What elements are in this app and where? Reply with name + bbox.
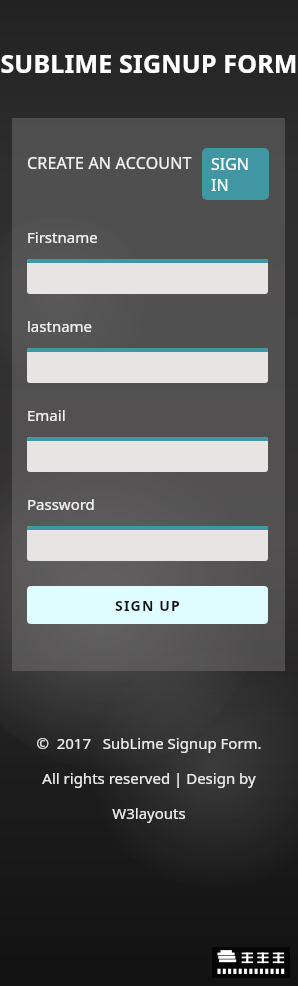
button[interactable] bbox=[27, 348, 268, 383]
staticText: lastname bbox=[27, 316, 93, 336]
staticText: © 2017 SubLime Signup Form. bbox=[0, 733, 298, 753]
staticText: Email bbox=[27, 405, 66, 425]
staticText: SIGN IN bbox=[211, 153, 269, 196]
staticText: Firstname bbox=[27, 227, 98, 247]
other: mobanwang.com watermark bbox=[212, 947, 290, 978]
staticText: W3layouts bbox=[0, 803, 298, 823]
button[interactable]: SIGN UP bbox=[27, 586, 268, 624]
staticText: Password bbox=[27, 494, 95, 514]
button[interactable] bbox=[27, 526, 268, 561]
button[interactable]: SIGN IN bbox=[202, 148, 269, 200]
staticText: CREATE AN ACCOUNT bbox=[27, 152, 192, 174]
button[interactable] bbox=[27, 437, 268, 472]
button[interactable] bbox=[27, 259, 268, 294]
staticText: SUBLIME SIGNUP FORM bbox=[0, 46, 298, 80]
staticText: All rights reserved | Design by bbox=[0, 768, 298, 788]
staticText: SIGN UP bbox=[115, 596, 181, 615]
